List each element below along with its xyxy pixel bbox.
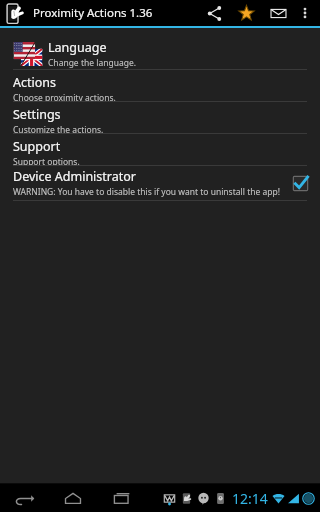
- staticText: Support: [13, 138, 61, 155]
- staticText: 12:14: [232, 489, 268, 508]
- staticText: Proximity Actions 1.36: [33, 5, 153, 21]
- staticText: Device Administrator: [13, 168, 137, 185]
- button[interactable]: Share: [198, 0, 230, 26]
- button[interactable]: Email: [262, 0, 294, 26]
- staticText: WARNING: You have to disable this if you…: [13, 186, 280, 198]
- button[interactable]: Actions: [0, 70, 320, 101]
- button[interactable]: Home: [56, 484, 90, 512]
- staticText: Actions: [13, 74, 57, 91]
- staticText: Language: [48, 39, 107, 56]
- button[interactable]: Language: [0, 38, 320, 69]
- button[interactable]: More options: [294, 0, 316, 26]
- button[interactable]: Settings: [0, 102, 320, 133]
- button[interactable]: Device Administrator: [0, 166, 320, 200]
- button[interactable]: Recents: [104, 484, 138, 512]
- button[interactable]: App icon, up: [3, 1, 27, 25]
- staticText: Choose proximity actions.: [13, 92, 116, 101]
- staticText: Customize the actions.: [13, 124, 104, 133]
- staticText: Change the language.: [48, 57, 136, 69]
- button[interactable]: Rate: [230, 0, 262, 26]
- staticText: Support options.: [13, 156, 80, 165]
- button[interactable]: Back: [8, 484, 42, 512]
- staticText: Settings: [13, 106, 61, 123]
- button[interactable]: Support: [0, 134, 320, 165]
